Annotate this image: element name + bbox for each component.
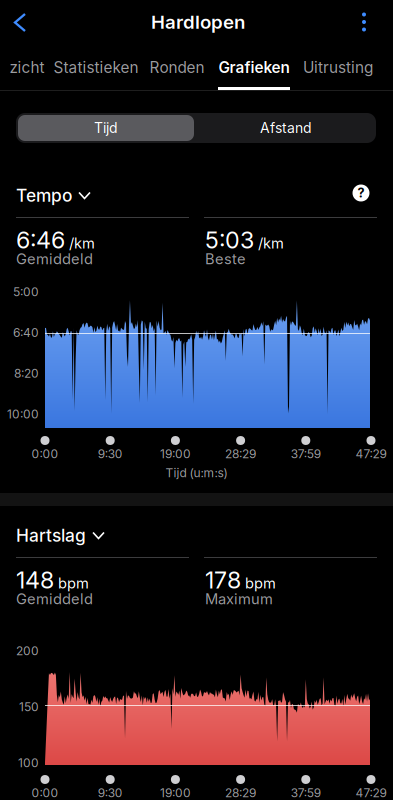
staticText: 6:46 (16, 226, 65, 254)
staticText: Hartslag (16, 525, 86, 546)
button[interactable]: Hartslag (0, 520, 116, 551)
staticText: /km (258, 234, 284, 252)
staticText: 47:29 (355, 786, 386, 800)
staticText: Gemiddeld (16, 590, 93, 608)
staticText: Gemiddeld (16, 250, 93, 268)
staticText: 148 (16, 566, 54, 594)
staticText: Ronden (149, 58, 204, 77)
staticText: 0:00 (31, 786, 58, 800)
staticText: Tijd (94, 119, 118, 136)
button[interactable]: Tempo (0, 180, 102, 211)
staticText: 19:00 (160, 447, 191, 461)
staticText: 5:03 (205, 226, 254, 254)
button[interactable]: Help (345, 179, 377, 207)
staticText: 5:00 (13, 285, 39, 299)
staticText: /km (69, 234, 95, 252)
button[interactable]: Back (0, 0, 44, 44)
staticText: Grafieken (218, 58, 289, 77)
button[interactable]: Grafieken (199, 45, 309, 90)
staticText: 8:20 (14, 366, 39, 381)
staticText: bpm (245, 574, 276, 592)
button[interactable]: Afstand (196, 113, 376, 143)
button[interactable]: More options (349, 0, 379, 44)
button[interactable]: Uitrusting (283, 45, 393, 90)
staticText: 47:29 (355, 447, 386, 461)
staticText: 28:29 (225, 786, 256, 800)
staticText: Hardlopen (151, 11, 245, 33)
button[interactable]: Statistieken (41, 45, 151, 90)
staticText: bpm (58, 574, 89, 592)
staticText: Afstand (260, 119, 312, 136)
staticText: 19:00 (160, 786, 191, 800)
staticText: 150 (19, 700, 39, 714)
staticText: 9:30 (98, 447, 123, 461)
staticText: 37:59 (291, 447, 321, 461)
staticText: Maximum (205, 590, 273, 608)
staticText: Uitrusting (303, 58, 373, 77)
button[interactable]: Tijd (16, 113, 196, 143)
staticText: 9:30 (98, 786, 123, 800)
staticText: Tempo (16, 185, 72, 206)
button[interactable]: Ronden (122, 45, 232, 90)
staticText: 0:00 (31, 447, 58, 461)
staticText: 100 (18, 756, 39, 770)
staticText: 10:00 (7, 407, 39, 421)
staticText: 37:59 (291, 786, 321, 800)
button[interactable]: zicht (0, 45, 82, 90)
staticText: Tijd (u:m:s) (165, 466, 227, 480)
staticText: Beste (205, 250, 246, 268)
staticText: 28:29 (225, 447, 256, 461)
staticText: 6:40 (13, 325, 39, 340)
staticText: ? (357, 185, 364, 201)
staticText: 178 (205, 566, 241, 594)
staticText: Statistieken (53, 58, 138, 77)
staticText: 200 (16, 644, 39, 658)
staticText: zicht (9, 58, 44, 77)
